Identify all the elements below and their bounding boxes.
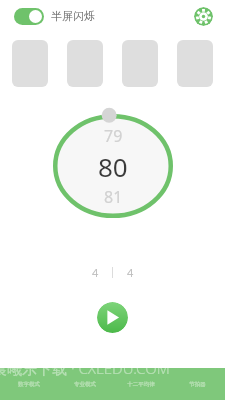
staticText: 4 — [127, 265, 134, 280]
staticText: 半屏闪烁 — [51, 9, 95, 23]
button[interactable]: 十二平均律 — [113, 368, 169, 400]
button[interactable]: Beat 4 — [177, 40, 213, 87]
button[interactable]: 半屏闪烁 toggle — [14, 8, 44, 25]
button[interactable]: Beat 2 — [67, 40, 103, 87]
button[interactable]: Beat 3 — [122, 40, 158, 87]
button[interactable]: 专业模式 — [57, 368, 113, 400]
button[interactable]: 数字模式 — [0, 368, 57, 400]
staticText: 81 — [104, 186, 123, 208]
staticText: 晨曦乐下载 · CXLEDU.COM — [0, 358, 170, 378]
staticText: 79 — [104, 125, 123, 147]
staticText: 节拍器 — [189, 381, 206, 388]
button[interactable]: 4 — [78, 263, 112, 281]
button[interactable]: 节拍器 — [169, 368, 225, 400]
staticText: 80 — [98, 149, 128, 184]
button[interactable]: Play — [97, 302, 128, 333]
button[interactable]: 4 — [113, 263, 147, 281]
staticText: 十二平均律 — [127, 381, 155, 388]
button[interactable]: Settings — [194, 7, 213, 26]
staticText: 专业模式 — [74, 381, 96, 388]
button[interactable]: BPM dial 80 — [49, 110, 177, 222]
staticText: 4 — [92, 265, 99, 280]
staticText: 数字模式 — [18, 381, 40, 388]
button[interactable]: Beat 1 — [12, 40, 48, 87]
